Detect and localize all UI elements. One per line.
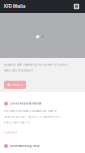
button[interactable]: KFD Media (4, 2, 25, 11)
staticText: Ready to start harvesting the power of p… (4, 63, 68, 66)
button[interactable]: Menu (72, 2, 81, 11)
staticText: KFD Media (4, 4, 25, 9)
staticText: public radio and TV. (4, 121, 31, 124)
staticText: KFD Media represents businesses who want… (4, 110, 57, 113)
staticText: advertise, sponsor, support or underwrit… (4, 115, 59, 118)
staticText: Contact us (11, 83, 22, 86)
staticText: Client Representative (10, 102, 42, 105)
button[interactable]: Contact us (4, 81, 26, 89)
button[interactable]: Learn More (4, 131, 17, 134)
staticText: Understanding Help (10, 144, 40, 148)
staticText: Learn More (4, 131, 17, 134)
staticText: radio and television? (4, 69, 33, 72)
